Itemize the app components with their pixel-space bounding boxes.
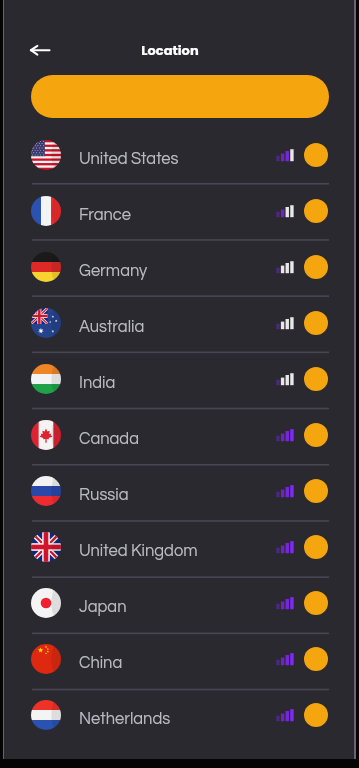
staticText: Canada: [79, 430, 139, 447]
staticText: Netherlands: [79, 710, 171, 727]
staticText: Australia: [79, 318, 145, 335]
button[interactable]: United States: [4, 127, 354, 183]
button[interactable]: Japan: [4, 575, 354, 631]
button[interactable]: China: [4, 631, 354, 687]
button[interactable]: India: [4, 351, 354, 407]
staticText: Germany: [79, 262, 148, 279]
button[interactable]: United Kingdom: [4, 519, 354, 575]
button[interactable]: Back: [26, 36, 54, 64]
staticText: China: [79, 654, 123, 671]
staticText: Location: [0, 41, 345, 59]
staticText: India: [79, 374, 116, 391]
staticText: United Kingdom: [79, 542, 198, 559]
staticText: Russia: [79, 486, 129, 503]
staticText: United States: [79, 150, 179, 167]
button[interactable]: Russia: [4, 463, 354, 519]
button[interactable]: Netherlands: [4, 687, 354, 743]
button[interactable]: Australia: [4, 295, 354, 351]
button[interactable]: Canada: [4, 407, 354, 463]
button[interactable]: Search location: [31, 75, 329, 118]
staticText: Japan: [79, 598, 127, 615]
staticText: France: [79, 206, 132, 223]
button[interactable]: Germany: [4, 239, 354, 295]
button[interactable]: France: [4, 183, 354, 239]
